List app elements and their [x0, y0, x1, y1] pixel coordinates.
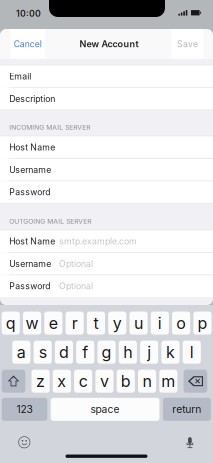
button[interactable]: v: [95, 370, 113, 393]
button[interactable]: return: [163, 398, 211, 421]
staticText: k: [166, 342, 175, 362]
button[interactable]: k: [161, 341, 179, 364]
staticText: Save: [177, 39, 198, 49]
staticText: OUTGOING MAIL SERVER: [9, 217, 91, 225]
staticText: Password: [9, 187, 50, 197]
staticText: Username: [9, 164, 51, 175]
staticText: d: [59, 342, 69, 362]
staticText: return: [172, 403, 201, 415]
button[interactable]: b: [117, 370, 135, 393]
staticText: s: [39, 342, 47, 362]
staticText: j: [147, 342, 151, 362]
button[interactable]: Host Name: [0, 136, 213, 158]
staticText: 123: [16, 403, 32, 415]
button[interactable]: Delete: [184, 370, 207, 393]
button[interactable]: d: [55, 341, 73, 364]
staticText: i: [158, 313, 162, 333]
button[interactable]: Password: [0, 181, 213, 203]
button[interactable]: f: [76, 341, 94, 364]
staticText: x: [57, 371, 66, 391]
staticText: t: [93, 313, 98, 333]
staticText: m: [161, 371, 175, 391]
button[interactable]: y: [108, 312, 126, 335]
button[interactable]: p: [193, 312, 211, 335]
staticText: l: [190, 342, 194, 362]
button[interactable]: Dictation: [186, 436, 194, 449]
button[interactable]: w: [23, 312, 41, 335]
button[interactable]: n: [138, 370, 156, 393]
staticText: c: [79, 371, 88, 391]
staticText: n: [143, 371, 152, 391]
staticText: b: [121, 371, 131, 391]
staticText: Email: [9, 71, 31, 82]
staticText: y: [113, 313, 122, 333]
button[interactable]: x: [53, 370, 71, 393]
button[interactable]: o: [172, 312, 190, 335]
staticText: p: [197, 313, 207, 333]
staticText: Username: [9, 258, 51, 269]
staticText: Description: [9, 94, 55, 104]
button[interactable]: m: [159, 370, 177, 393]
button[interactable]: Emoji: [18, 436, 30, 448]
staticText: 10:00: [16, 8, 41, 19]
staticText: z: [36, 371, 45, 391]
button[interactable]: u: [129, 312, 148, 335]
staticText: Optional: [59, 258, 93, 269]
button[interactable]: z: [31, 370, 50, 393]
button[interactable]: Shift: [2, 370, 25, 393]
staticText: Password: [9, 281, 50, 291]
button[interactable]: h: [119, 341, 137, 364]
button[interactable]: e: [44, 312, 62, 335]
button[interactable]: Password: [0, 275, 213, 297]
staticText: space: [91, 403, 120, 415]
button[interactable]: a: [12, 341, 30, 364]
staticText: f: [82, 342, 88, 362]
button[interactable]: Username: [0, 159, 213, 181]
button[interactable]: Username: [0, 253, 213, 275]
button[interactable]: c: [74, 370, 92, 393]
staticText: v: [100, 371, 109, 391]
staticText: a: [17, 342, 26, 362]
staticText: h: [123, 342, 132, 362]
button[interactable]: t: [87, 312, 105, 335]
staticText: Host Name: [9, 142, 55, 153]
staticText: INCOMING MAIL SERVER: [9, 123, 90, 131]
staticText: o: [176, 313, 186, 333]
button[interactable]: j: [140, 341, 158, 364]
button[interactable]: r: [66, 312, 84, 335]
button[interactable]: i: [151, 312, 169, 335]
staticText: g: [101, 342, 111, 362]
button[interactable]: Description: [0, 88, 213, 110]
staticText: u: [134, 313, 143, 333]
button[interactable]: Cancel: [11, 29, 45, 59]
button[interactable]: s: [34, 341, 52, 364]
staticText: Optional: [59, 281, 93, 291]
staticText: smtp.example.com: [59, 236, 137, 247]
staticText: e: [49, 313, 58, 333]
staticText: Host Name: [9, 236, 55, 247]
button[interactable]: Save: [171, 29, 203, 59]
staticText: Cancel: [14, 39, 42, 49]
staticText: r: [72, 313, 78, 333]
button[interactable]: Email: [0, 65, 213, 87]
staticText: New Account: [80, 38, 139, 49]
button[interactable]: space: [51, 398, 159, 421]
button[interactable]: Host Name: [0, 230, 213, 252]
button[interactable]: q: [2, 312, 20, 335]
button[interactable]: l: [183, 341, 201, 364]
staticText: w: [26, 313, 39, 333]
button[interactable]: 123: [2, 398, 47, 421]
staticText: q: [6, 313, 16, 333]
button[interactable]: g: [97, 341, 116, 364]
